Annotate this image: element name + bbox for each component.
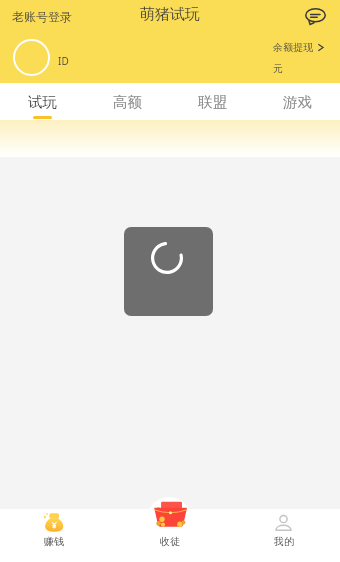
- staticText: 元: [273, 62, 283, 75]
- button[interactable]: 试玩: [0, 83, 85, 120]
- button[interactable]: 赚钱: [0, 509, 107, 562]
- staticText: 游戏: [283, 93, 312, 111]
- staticText: 萌猪试玩: [140, 5, 200, 24]
- button[interactable]: 老账号登录: [12, 9, 72, 24]
- button[interactable]: [13, 39, 50, 76]
- button[interactable]: 高额: [85, 83, 170, 120]
- button[interactable]: 游戏: [255, 83, 340, 120]
- staticText: 收徒: [160, 535, 180, 548]
- staticText: 试玩: [28, 93, 57, 111]
- button[interactable]: 收徒: [113, 496, 227, 562]
- staticText: 高额: [113, 93, 142, 111]
- button[interactable]: Messages: [304, 7, 326, 25]
- staticText: 余额提现: [273, 41, 313, 54]
- staticText: 联盟: [198, 93, 227, 111]
- button[interactable]: 联盟: [170, 83, 255, 120]
- button[interactable]: 我的: [227, 509, 340, 562]
- button[interactable]: 余额提现: [273, 41, 324, 75]
- staticText: 赚钱: [44, 535, 64, 548]
- staticText: ID: [58, 54, 69, 68]
- staticText: 我的: [274, 535, 294, 548]
